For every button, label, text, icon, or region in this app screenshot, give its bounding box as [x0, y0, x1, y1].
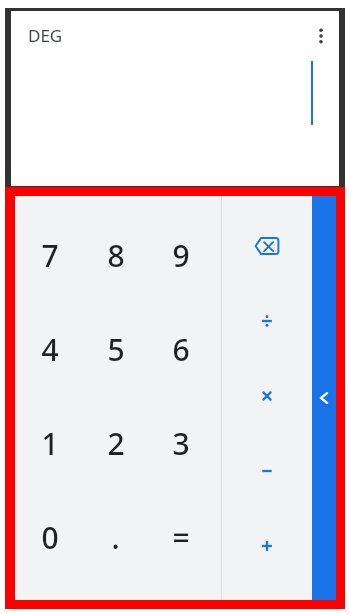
button[interactable]: More options: [303, 18, 339, 54]
button[interactable]: 0: [17, 490, 83, 584]
button[interactable]: 8: [83, 208, 148, 302]
staticText: 5: [107, 329, 125, 370]
staticText: 3: [172, 423, 190, 464]
staticText: 1: [41, 423, 59, 464]
button[interactable]: 7: [17, 208, 83, 302]
button[interactable]: 9: [148, 208, 213, 302]
button[interactable]: Add: [222, 508, 312, 583]
staticText: .: [111, 517, 120, 558]
button[interactable]: Subtract: [222, 433, 312, 508]
staticText: 0: [41, 517, 59, 558]
staticText: 2: [107, 423, 125, 464]
staticText: 9: [172, 235, 190, 276]
button[interactable]: =: [148, 490, 213, 584]
staticText: DEG: [28, 24, 63, 47]
button[interactable]: Divide: [222, 283, 312, 358]
button[interactable]: 6: [148, 302, 213, 396]
staticText: 8: [107, 235, 125, 276]
button[interactable]: .: [83, 490, 148, 584]
button[interactable]: Expand panel: [312, 196, 336, 600]
button[interactable]: Multiply: [222, 358, 312, 433]
staticText: 4: [41, 329, 59, 370]
staticText: 6: [172, 329, 190, 370]
button[interactable]: 1: [17, 396, 83, 490]
button[interactable]: 4: [17, 302, 83, 396]
button[interactable]: 3: [148, 396, 213, 490]
button[interactable]: 5: [83, 302, 148, 396]
button[interactable]: 2: [83, 396, 148, 490]
staticText: =: [172, 517, 190, 558]
staticText: 7: [41, 235, 59, 276]
button[interactable]: Delete: [222, 208, 312, 283]
